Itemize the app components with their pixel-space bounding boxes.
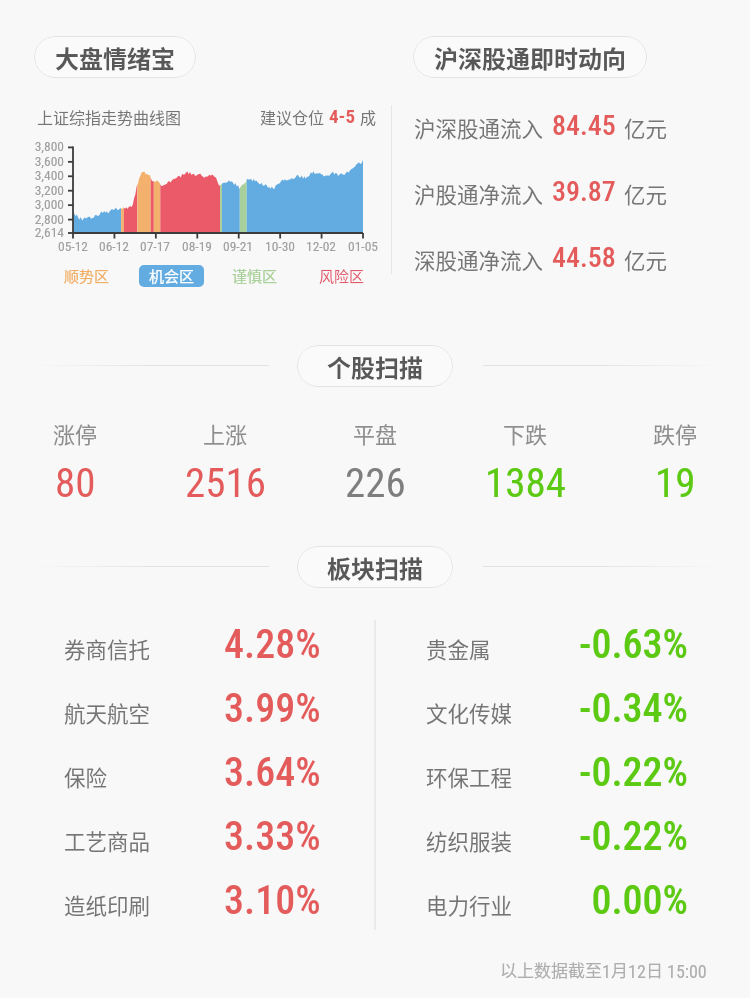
staticText: 沪深股通流入 [414,112,544,143]
staticText: 跌停 [653,417,698,449]
staticText: 个股扫描 [327,349,423,384]
staticText: 08-19 [172,238,222,254]
staticText: 贵金属 [426,633,491,664]
staticText: -0.22% [518,749,688,796]
staticText: 航天航空 [64,697,151,728]
staticText: 06-12 [89,238,139,254]
staticText: 2516 [185,459,266,507]
staticText: 2,800 [20,211,64,227]
staticText: 12 [628,961,646,982]
staticText: 造纸印刷 [64,889,151,920]
staticText: 亿元 [624,244,668,275]
staticText: 10-30 [255,238,305,254]
staticText: 风险区 [319,265,365,287]
staticText: 3,000 [20,196,64,212]
button[interactable]: 平盘 [300,417,450,507]
staticText: 上证综指走势曲线图 [37,105,182,128]
staticText: 1 [602,961,611,982]
staticText: 3,400 [20,167,64,183]
staticText: 建议仓位 [260,105,325,128]
staticText: 文化传媒 [426,697,513,728]
staticText: 4.28% [224,621,321,668]
staticText: 沪股通净流入 [414,178,544,209]
staticText: 226 [345,459,406,507]
staticText: 深股通净流入 [414,244,544,275]
staticText: -0.34% [518,685,688,732]
staticText: -0.63% [518,621,688,668]
staticText: 保险 [64,761,108,792]
staticText: 亿元 [624,178,668,209]
staticText: 大盘情绪宝 [55,40,175,75]
staticText: 39.87 [552,175,616,208]
staticText: 平盘 [353,417,398,449]
staticText: 纺织服装 [426,825,513,856]
staticText: 3,600 [20,153,64,169]
staticText: 01-05 [338,238,388,254]
staticText: 工艺商品 [64,825,151,856]
staticText: 3,200 [20,182,64,198]
staticText: 0.00% [518,877,688,924]
staticText: 沪深股通即时动向 [434,40,626,75]
staticText: 3.64% [224,749,321,796]
staticText: 09-21 [213,238,263,254]
staticText: 19 [655,459,696,507]
staticText: 80 [55,459,96,507]
staticText: 机会区 [149,265,195,287]
staticText: 2,614 [20,224,64,240]
staticText: 涨停 [53,417,98,449]
button[interactable]: 个股扫描 [297,345,453,387]
staticText: 板块扫描 [327,550,423,585]
staticText: 07-17 [130,238,180,254]
staticText: 3.33% [224,813,321,860]
button[interactable]: 板块扫描 [297,546,453,588]
staticText: 1384 [485,459,566,507]
staticText: -0.22% [518,813,688,860]
staticText: 谨慎区 [232,265,278,287]
button[interactable]: 以上数据截至 [500,957,707,982]
staticText: 月 [611,957,628,982]
staticText: 12-02 [296,238,346,254]
staticText: 3.10% [224,877,321,924]
staticText: 3.99% [224,685,321,732]
staticText: 日 [646,957,667,982]
staticText: 成 [360,105,377,128]
button[interactable]: 涨停 [0,417,150,507]
button[interactable]: 大盘情绪宝 [34,36,196,78]
staticText: 下跌 [503,417,548,449]
staticText: 上涨 [203,417,248,449]
button[interactable]: 跌停 [600,417,750,507]
staticText: 电力行业 [426,889,513,920]
button[interactable]: 下跌 [450,417,600,507]
button[interactable]: 机会区 [139,265,204,287]
staticText: 环保工程 [426,761,513,792]
staticText: 84.45 [552,109,616,142]
staticText: 3,800 [20,138,64,154]
staticText: 4-5 [329,105,356,127]
staticText: 券商信托 [64,633,151,664]
staticText: 44.58 [552,241,616,274]
button[interactable]: 沪深股通即时动向 [413,36,647,78]
staticText: 05-12 [48,238,98,254]
button[interactable]: 上涨 [150,417,300,507]
staticText: 以上数据截至 [500,957,602,982]
staticText: 顺势区 [64,265,110,287]
staticText: 亿元 [624,112,668,143]
staticText: 15:00 [667,961,707,982]
